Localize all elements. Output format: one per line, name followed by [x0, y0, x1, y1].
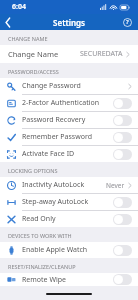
button[interactable]: Toggle [113, 98, 132, 109]
button[interactable]: Enable Apple Watch [0, 242, 138, 258]
staticText: ? [126, 18, 129, 26]
staticText: RESET/FINALIZE/CLEANUP [8, 263, 76, 270]
staticText: SECUREDATA [80, 49, 123, 59]
staticText: Change Name [8, 49, 59, 59]
staticText: Password Recovery [22, 115, 86, 125]
button[interactable]: Toggle [113, 149, 132, 160]
staticText: Activate Face ID [22, 149, 75, 159]
button[interactable]: Back [0, 14, 16, 30]
staticText: 6:04 [12, 2, 26, 12]
button[interactable]: Remember Password [0, 129, 138, 145]
staticText: LOCKING OPTIONS [8, 167, 58, 174]
staticText: Inactivity AutoLock [22, 180, 85, 190]
staticText: Change Password [22, 81, 81, 91]
button[interactable]: Toggle [113, 197, 132, 208]
button[interactable]: Toggle [113, 115, 132, 126]
staticText: Remember Password [22, 132, 92, 142]
button[interactable]: Activate Face ID [0, 146, 138, 162]
button[interactable]: Remote Wipe [0, 273, 138, 286]
button[interactable]: Change Password [0, 78, 138, 94]
button[interactable]: Password Recovery [0, 112, 138, 128]
button[interactable]: Read Only [0, 211, 138, 227]
staticText: Step-away AutoLock [22, 197, 89, 207]
button[interactable]: Toggle [113, 132, 132, 143]
button[interactable]: 2-Factor Authentication [0, 95, 138, 111]
button[interactable]: Toggle [113, 214, 132, 225]
staticText: Settings [53, 17, 85, 28]
staticText: 2-Factor Authentication [22, 98, 100, 108]
staticText: Never [106, 181, 125, 190]
button[interactable]: Inactivity AutoLock [0, 177, 138, 193]
button[interactable]: Toggle [113, 245, 132, 256]
button[interactable]: Change Name [0, 45, 138, 63]
staticText: PASSWORD/ACCESS [8, 68, 59, 75]
staticText: Read Only [22, 214, 56, 224]
staticText: Remote Wipe [22, 275, 66, 285]
staticText: Enable Apple Watch [22, 245, 88, 255]
button[interactable]: Help [121, 16, 133, 28]
staticText: DEVICES TO WORK WITH [8, 232, 72, 239]
button[interactable]: Toggle [113, 274, 132, 285]
button[interactable]: Step-away AutoLock [0, 194, 138, 210]
staticText: CHANGE NAME [8, 35, 48, 42]
